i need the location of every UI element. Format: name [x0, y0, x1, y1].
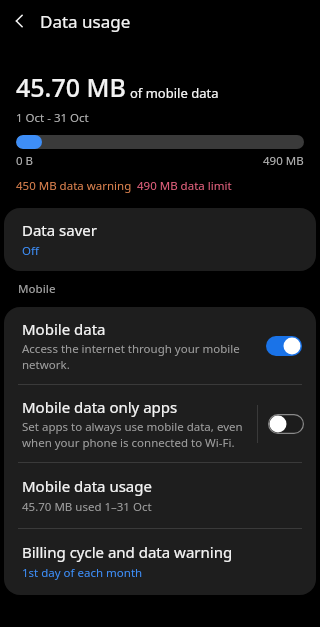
staticText: Data usage	[40, 10, 131, 33]
staticText: 1st day of each month	[22, 565, 143, 581]
staticText: 45.70 MB	[16, 70, 126, 104]
button[interactable]: Billing cycle and data warning	[4, 529, 316, 595]
button[interactable]: Mobile data	[4, 307, 316, 384]
staticText: Billing cycle and data warning	[22, 542, 233, 562]
button[interactable]: Mobile data only apps toggle	[258, 414, 306, 434]
staticText: Off	[22, 243, 39, 259]
button[interactable]: Back	[0, 1, 40, 41]
staticText: Set apps to always use mobile data, even…	[22, 419, 257, 450]
staticText: Access the internet through your mobile …	[22, 341, 258, 372]
staticText: 450 MB data warning	[16, 178, 132, 194]
staticText: Mobile data only apps	[22, 397, 178, 417]
staticText: 0 B	[16, 153, 34, 169]
button[interactable]: Data saver	[4, 208, 316, 271]
staticText: Mobile data usage	[22, 476, 152, 496]
staticText: 45.70 MB used 1–31 Oct	[22, 499, 152, 515]
staticText: of mobile data	[130, 84, 219, 102]
staticText: Data saver	[22, 220, 97, 240]
staticText: 490 MB	[263, 153, 304, 169]
staticText: Mobile data	[22, 319, 106, 339]
staticText: 490 MB data limit	[137, 178, 232, 194]
button[interactable]: Mobile data usage	[4, 463, 316, 528]
staticText: 1 Oct - 31 Oct	[16, 110, 89, 126]
button[interactable]: Mobile data only apps	[4, 385, 316, 462]
staticText: Mobile	[18, 281, 56, 297]
